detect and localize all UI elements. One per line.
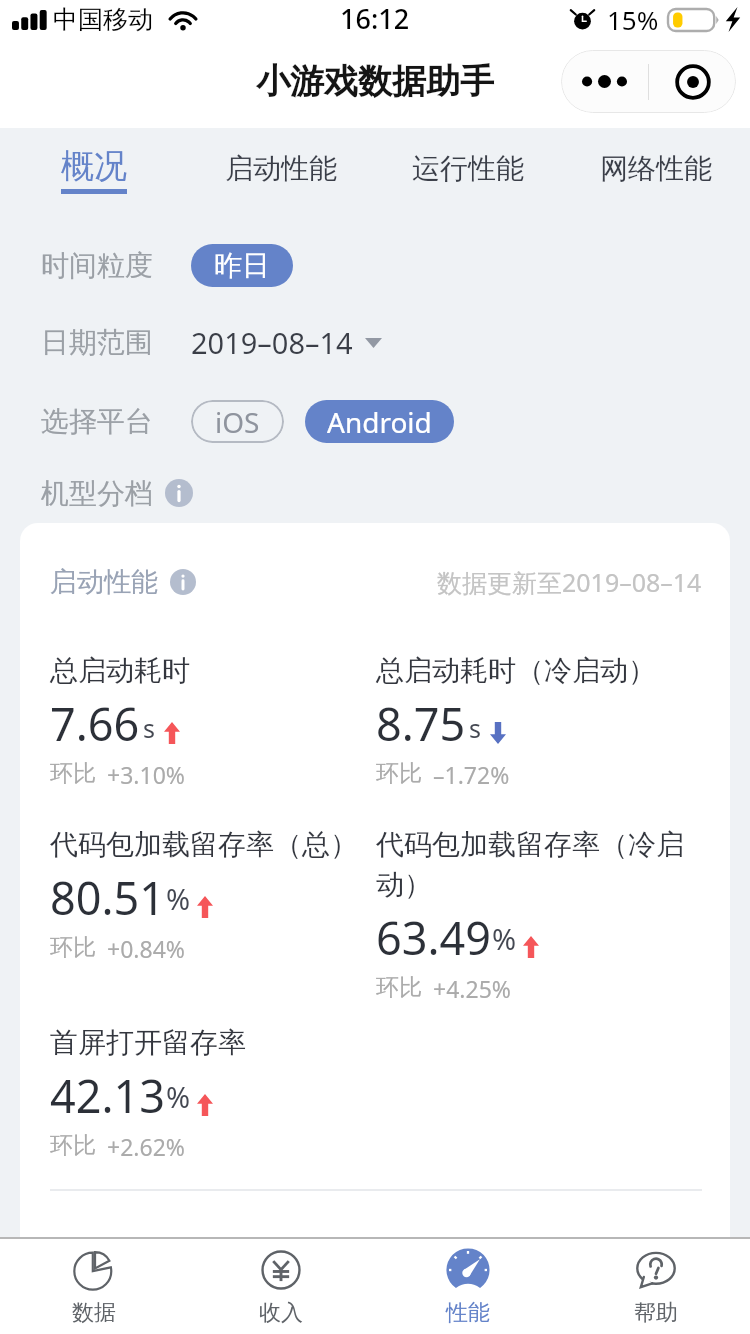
- button[interactable]: 2019–08–14: [191, 323, 382, 362]
- staticText: 选择平台: [41, 404, 191, 439]
- button[interactable]: 帮助: [562, 1239, 750, 1334]
- staticText: s: [469, 711, 481, 745]
- staticText: Android: [327, 403, 432, 441]
- staticText: iOS: [215, 403, 260, 441]
- staticText: 8.75: [376, 693, 466, 754]
- staticText: 2019–08–14: [191, 323, 353, 362]
- staticText: +2.62%: [107, 1131, 185, 1162]
- staticText: 运行性能: [412, 151, 524, 186]
- button[interactable]: 运行性能: [374, 128, 562, 223]
- staticText: 帮助: [634, 1299, 678, 1327]
- staticText: 环比: [376, 973, 422, 1002]
- button[interactable]: Android: [305, 400, 454, 443]
- staticText: 80.51: [50, 867, 166, 928]
- button[interactable]: 数据: [0, 1239, 187, 1334]
- staticText: 总启动耗时: [50, 653, 190, 688]
- staticText: 网络性能: [600, 151, 712, 186]
- staticText: 小游戏数据助手: [256, 60, 494, 103]
- staticText: 日期范围: [41, 325, 191, 360]
- button[interactable]: More options: [561, 50, 648, 113]
- staticText: +3.10%: [107, 759, 185, 790]
- button[interactable]: Close mini program: [649, 50, 736, 113]
- staticText: 16:12: [340, 0, 410, 37]
- staticText: 63.49: [376, 907, 492, 968]
- button[interactable]: iOS: [191, 400, 284, 443]
- staticText: 42.13: [50, 1065, 166, 1126]
- staticText: 中国移动: [53, 4, 153, 35]
- staticText: 代码包加载留存率（冷启动）: [376, 827, 702, 902]
- staticText: 7.66: [50, 693, 140, 754]
- button[interactable]: 性能: [374, 1239, 562, 1334]
- staticText: 昨日: [214, 248, 270, 283]
- staticText: %: [492, 919, 517, 958]
- staticText: 数据: [72, 1299, 116, 1327]
- staticText: 环比: [50, 1131, 96, 1160]
- staticText: 环比: [376, 759, 422, 788]
- staticText: 启动性能: [225, 151, 337, 186]
- staticText: 代码包加载留存率（总）: [50, 827, 358, 862]
- button[interactable]: 启动性能: [187, 128, 374, 223]
- staticText: –1.72%: [433, 759, 510, 790]
- button[interactable]: 昨日: [191, 244, 293, 287]
- staticText: 首屏打开留存率: [50, 1025, 246, 1060]
- button[interactable]: 概况: [0, 128, 187, 223]
- staticText: 启动性能: [50, 565, 158, 599]
- staticText: 时间粒度: [41, 248, 191, 283]
- staticText: 总启动耗时（冷启动）: [376, 653, 656, 688]
- staticText: +4.25%: [433, 973, 511, 1004]
- staticText: 环比: [50, 759, 96, 788]
- staticText: 环比: [50, 933, 96, 962]
- staticText: 数据更新至2019–08–14: [437, 565, 702, 599]
- staticText: 机型分档: [41, 476, 153, 511]
- staticText: 15%: [607, 2, 659, 37]
- staticText: s: [143, 711, 155, 745]
- staticText: %: [166, 879, 191, 918]
- staticText: %: [166, 1077, 191, 1116]
- staticText: 收入: [259, 1299, 303, 1327]
- button[interactable]: 收入: [187, 1239, 374, 1334]
- staticText: 性能: [446, 1299, 490, 1327]
- button[interactable]: 网络性能: [562, 128, 750, 223]
- staticText: 概况: [61, 145, 127, 187]
- staticText: +0.84%: [107, 933, 185, 964]
